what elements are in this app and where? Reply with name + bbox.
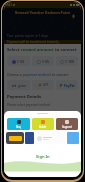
staticText: to convert (52, 72, 69, 77)
staticText: Choose a (7, 72, 23, 77)
button[interactable]: UPI (32, 80, 54, 90)
staticText: PayPal (64, 84, 75, 88)
staticText: payment method (23, 72, 52, 77)
staticText: Guide (39, 125, 47, 129)
button[interactable]: ₹ 33 (7, 56, 30, 66)
staticText: ₹ 33 (17, 59, 25, 64)
staticText: P (60, 83, 63, 88)
staticText: reward amount (21, 47, 55, 53)
button[interactable] (6, 132, 24, 144)
button[interactable]: ₹ 100 (56, 56, 78, 66)
staticText: et (12, 83, 17, 88)
staticText: Req (16, 125, 21, 129)
staticText: ₹ 65 (42, 59, 50, 64)
staticText: Reward Voucher Redeem Point (15, 10, 71, 15)
button[interactable]: Guide (32, 118, 54, 130)
staticText: UPI (43, 83, 49, 87)
button[interactable] (35, 132, 66, 144)
button[interactable]: P (56, 80, 78, 90)
button[interactable] (67, 132, 79, 144)
button[interactable] (25, 132, 34, 144)
button[interactable]: et (7, 80, 30, 90)
staticText: Payment Details (7, 94, 42, 100)
button[interactable]: Req (7, 118, 30, 130)
staticText: Select (7, 47, 21, 53)
staticText: Sign In (36, 154, 50, 159)
staticText: gram (18, 84, 26, 88)
staticText: ₹ 100 (65, 59, 75, 64)
button[interactable]: Sign In (4, 154, 81, 159)
button[interactable]: Notifications (70, 13, 77, 20)
staticText: to convert (55, 47, 77, 53)
staticText: Please select payment method (7, 103, 51, 107)
staticText: Support (62, 125, 72, 129)
button[interactable]: ₹ 65 (32, 56, 54, 66)
staticText: Payment will be transferred instantly (7, 40, 59, 44)
staticText: Your points expire in 7 days (7, 34, 49, 38)
staticText: 9:41 (6, 3, 12, 7)
button[interactable]: Support (56, 118, 78, 130)
